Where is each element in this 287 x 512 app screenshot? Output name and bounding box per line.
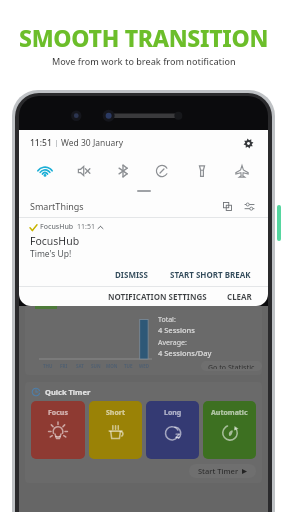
button[interactable]: Auto rotate: [142, 156, 182, 186]
button[interactable]: Devices: [219, 198, 235, 214]
staticText: NOTIFICATION SETTINGS: [108, 291, 207, 302]
button[interactable]: Automatic: [203, 401, 256, 459]
staticText: Total:: [158, 315, 176, 325]
button[interactable]: Sound off: [64, 156, 103, 186]
staticText: 4 Sessions: [158, 325, 195, 335]
staticText: Short: [106, 408, 125, 418]
button[interactable]: FocusHub: [19, 218, 268, 286]
staticText: FocusHub: [30, 234, 80, 248]
staticText: CLEAR: [227, 291, 252, 302]
button[interactable]: Wi-Fi: [25, 156, 64, 186]
staticText: Go to Statistic: [208, 363, 255, 369]
button[interactable]: Short: [89, 401, 142, 459]
staticText: SmartThings: [30, 200, 84, 212]
staticText: 11:51: [30, 137, 52, 149]
staticText: WED: [139, 363, 150, 369]
button[interactable]: Bluetooth: [103, 156, 142, 186]
staticText: 11:51: [77, 222, 95, 232]
button[interactable]: DISMISS: [109, 266, 154, 283]
button[interactable]: START SHORT BREAK: [164, 266, 257, 283]
button[interactable]: NOTIFICATION SETTINGS: [103, 288, 212, 305]
staticText: Start Timer: [198, 466, 239, 476]
button[interactable]: Airplane mode: [222, 156, 262, 186]
button[interactable]: Focus: [31, 401, 85, 459]
staticText: START SHORT BREAK: [170, 269, 251, 280]
staticText: TUE: [124, 363, 133, 369]
staticText: Automatic: [211, 408, 248, 418]
staticText: Long: [164, 408, 182, 418]
staticText: Average:: [158, 338, 187, 348]
staticText: MON: [106, 363, 118, 369]
button[interactable]: CLEAR: [222, 288, 257, 305]
staticText: DISMISS: [115, 269, 148, 280]
button[interactable]: Long: [146, 401, 199, 459]
button[interactable]: Start Timer: [189, 464, 256, 478]
button[interactable]: Go to Statistic: [201, 361, 262, 371]
staticText: Quick Timer: [45, 387, 91, 397]
staticText: SAT: [76, 363, 84, 369]
staticText: Focus: [48, 408, 68, 418]
button[interactable]: Quick settings: [241, 198, 257, 214]
staticText: FRI: [60, 363, 68, 369]
staticText: SMOOTH TRANSITION: [19, 22, 269, 53]
staticText: FocusHub: [40, 222, 74, 232]
staticText: 4 Sessions/Day: [158, 348, 212, 358]
staticText: Wed 30 January: [61, 137, 124, 149]
staticText: SUN: [91, 363, 101, 369]
button[interactable]: Flashlight: [182, 156, 222, 186]
staticText: Move from work to break from notificatio…: [52, 55, 236, 67]
staticText: Time's Up!: [30, 248, 72, 260]
button[interactable]: Settings: [239, 134, 257, 152]
staticText: THU: [43, 363, 53, 369]
